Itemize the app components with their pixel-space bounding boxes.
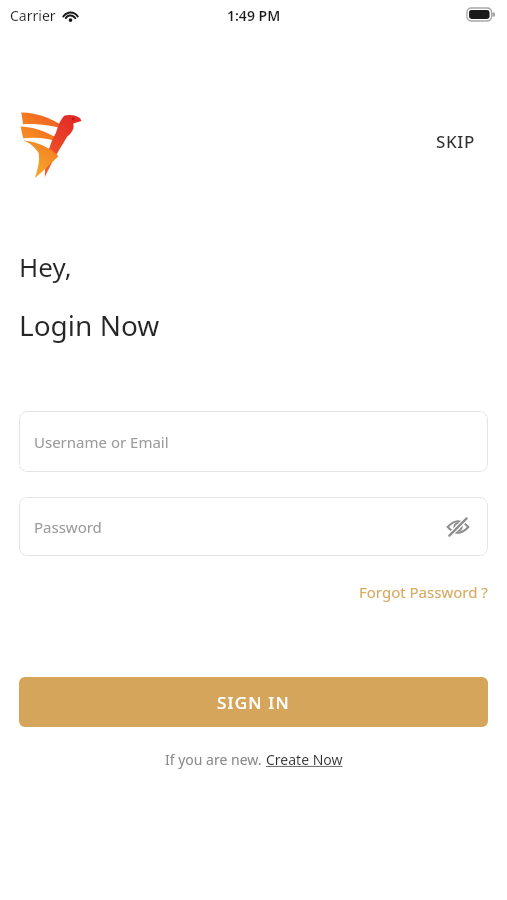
staticText: 1:49 PM [227, 6, 281, 25]
staticText: Carrier [10, 6, 56, 25]
staticText: Username or Email [34, 432, 169, 452]
staticText: If you are new. [165, 750, 266, 769]
button[interactable]: Create Now [266, 750, 343, 769]
button[interactable]: Show password [440, 509, 476, 545]
staticText: SKIP [436, 130, 475, 153]
staticText: SIGN IN [217, 691, 290, 714]
button[interactable]: SIGN IN [19, 677, 488, 727]
staticText: Hey, [19, 249, 72, 284]
button[interactable]: SKIP [430, 126, 481, 157]
staticText: Create Now [266, 750, 343, 769]
button[interactable]: Username or Email [19, 411, 488, 472]
staticText: Password [34, 517, 440, 537]
button[interactable]: Forgot Password ? [353, 578, 494, 606]
staticText: Forgot Password ? [359, 582, 488, 602]
staticText: Login Now [19, 306, 160, 344]
button[interactable]: Password [19, 497, 488, 556]
